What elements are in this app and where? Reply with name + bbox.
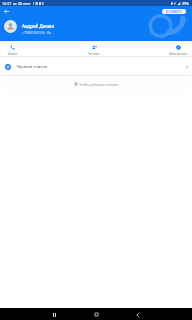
staticText: Нежелательный [168,52,188,56]
staticText: Чёрный список [16,64,48,70]
staticText: Контакт [88,52,100,56]
staticText: ДОБАВИТЬ [166,10,183,14]
staticText: Вызов [8,52,17,56]
button[interactable]: ДОБАВИТЬ [162,9,186,14]
staticText: +79500105156 · Ru [22,30,52,34]
button[interactable]: Back [132,310,144,319]
staticText: Андрей Демин [22,23,55,29]
button[interactable]: Вызов [2,41,22,56]
button[interactable]: Контакт [84,41,104,56]
staticText: 14:37 вс 28 сент [2,1,31,6]
staticText: Чтобы добавить контакт [79,82,119,86]
button[interactable]: Чёрный список [0,58,192,75]
button[interactable]: Recent apps [48,310,60,319]
button[interactable]: Back [2,7,11,16]
button[interactable]: Нежелательный [168,41,188,56]
staticText: 39% [182,1,190,6]
button[interactable]: Home [90,310,102,319]
